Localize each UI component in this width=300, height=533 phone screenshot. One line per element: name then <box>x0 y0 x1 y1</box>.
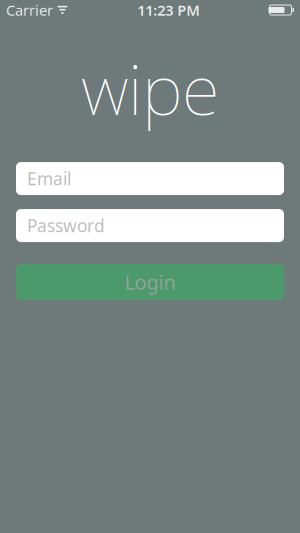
button[interactable]: Email <box>16 162 284 195</box>
staticText: Email <box>27 167 71 190</box>
staticText: Carrier <box>6 0 53 20</box>
staticText: wipe <box>81 42 219 134</box>
button[interactable]: Password <box>16 209 284 242</box>
button[interactable]: Login <box>16 264 284 300</box>
staticText: Password <box>27 214 105 237</box>
staticText: Login <box>124 269 175 295</box>
staticText: 11:23 PM <box>137 0 200 20</box>
